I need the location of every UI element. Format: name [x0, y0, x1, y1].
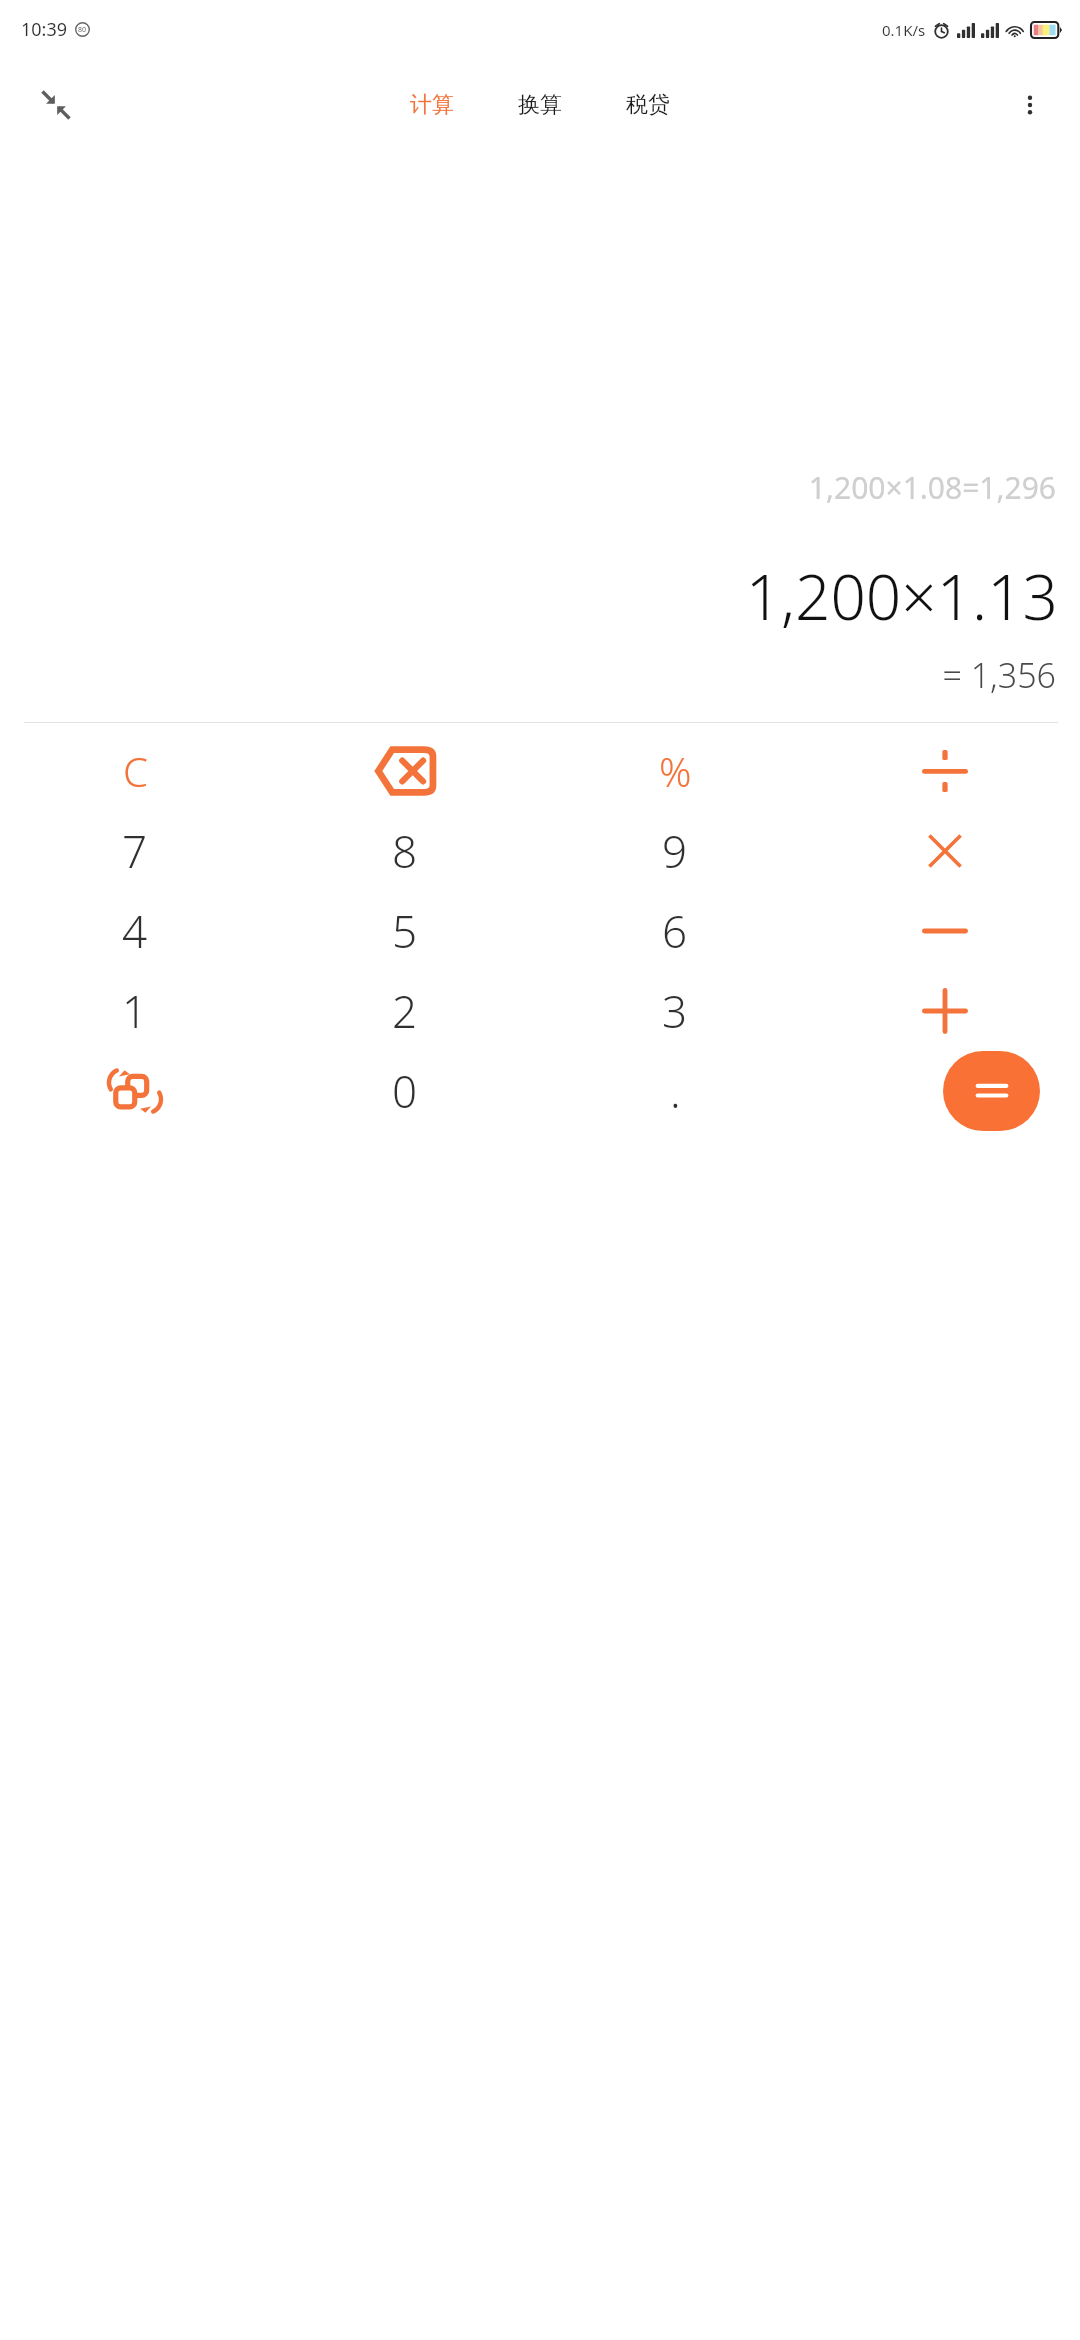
staticText: 4: [122, 901, 148, 961]
button[interactable]: Divide: [810, 731, 1080, 811]
staticText: 9: [662, 821, 688, 881]
staticText: 7: [122, 821, 148, 881]
staticText: .: [670, 1061, 681, 1121]
button[interactable]: Equals: [943, 1051, 1040, 1131]
button[interactable]: Collapse: [24, 73, 88, 137]
button[interactable]: 3: [540, 971, 810, 1051]
staticText: 换算: [518, 91, 562, 119]
button[interactable]: 4: [0, 891, 270, 971]
button[interactable]: Plus: [810, 971, 1080, 1051]
staticText: %: [659, 744, 692, 798]
button[interactable]: 7: [0, 811, 270, 891]
button[interactable]: 6: [540, 891, 810, 971]
staticText: 80: [78, 25, 87, 35]
button[interactable]: 换算: [504, 81, 576, 129]
button[interactable]: %: [540, 731, 810, 811]
staticText: 10:39: [21, 17, 68, 42]
staticText: 8: [392, 821, 418, 881]
staticText: C: [123, 744, 148, 798]
staticText: 1,200×1.13: [0, 554, 1058, 638]
button[interactable]: Convert units: [0, 1051, 270, 1131]
staticText: 1: [122, 981, 148, 1041]
button[interactable]: .: [540, 1051, 810, 1131]
staticText: 1,200×1.08=1,296: [0, 467, 1056, 508]
button[interactable]: 1: [0, 971, 270, 1051]
staticText: 6: [662, 901, 688, 961]
staticText: 5: [392, 901, 418, 961]
button[interactable]: C: [0, 731, 270, 811]
button[interactable]: Backspace: [270, 731, 540, 811]
staticText: 2: [392, 981, 418, 1041]
button[interactable]: 0: [270, 1051, 540, 1131]
button[interactable]: 9: [540, 811, 810, 891]
staticText: 3: [662, 981, 688, 1041]
staticText: 0: [392, 1061, 418, 1121]
staticText: 0.1K/s: [882, 20, 926, 40]
button[interactable]: 8: [270, 811, 540, 891]
button[interactable]: 计算: [396, 81, 468, 129]
button[interactable]: 2: [270, 971, 540, 1051]
button[interactable]: 5: [270, 891, 540, 971]
button[interactable]: Minus: [810, 891, 1080, 971]
button[interactable]: Multiply: [810, 811, 1080, 891]
button[interactable]: More options: [998, 73, 1062, 137]
staticText: 税贷: [626, 91, 670, 119]
button[interactable]: 税贷: [612, 81, 684, 129]
staticText: 计算: [410, 91, 454, 119]
staticText: = 1,356: [0, 652, 1056, 698]
